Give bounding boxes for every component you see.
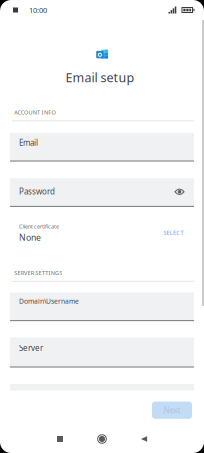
staticText: Email — [19, 137, 38, 148]
staticText: ACCOUNT INFO — [14, 108, 55, 116]
staticText: Password — [19, 186, 55, 197]
staticText: Domain\Username — [19, 297, 79, 306]
staticText: Client certificate — [19, 222, 59, 230]
button[interactable]: Server — [10, 337, 194, 367]
button[interactable]: Next — [152, 402, 192, 419]
staticText: SELECT — [163, 229, 183, 236]
staticText: Server — [19, 342, 43, 353]
staticText: 10:00 — [29, 5, 47, 15]
button[interactable]: Client certificate — [0, 222, 204, 246]
button[interactable]: Password — [10, 178, 194, 207]
button[interactable]: Home — [81, 425, 123, 453]
button[interactable]: Recent apps — [39, 425, 81, 453]
button[interactable]: Email — [10, 133, 194, 161]
button[interactable]: Back — [123, 425, 165, 453]
button[interactable]: Domain\Username — [10, 292, 194, 321]
staticText: SERVER SETTINGS — [14, 269, 62, 277]
staticText: Next — [163, 405, 180, 416]
staticText: Email setup — [65, 69, 134, 86]
staticText: None — [19, 231, 41, 243]
